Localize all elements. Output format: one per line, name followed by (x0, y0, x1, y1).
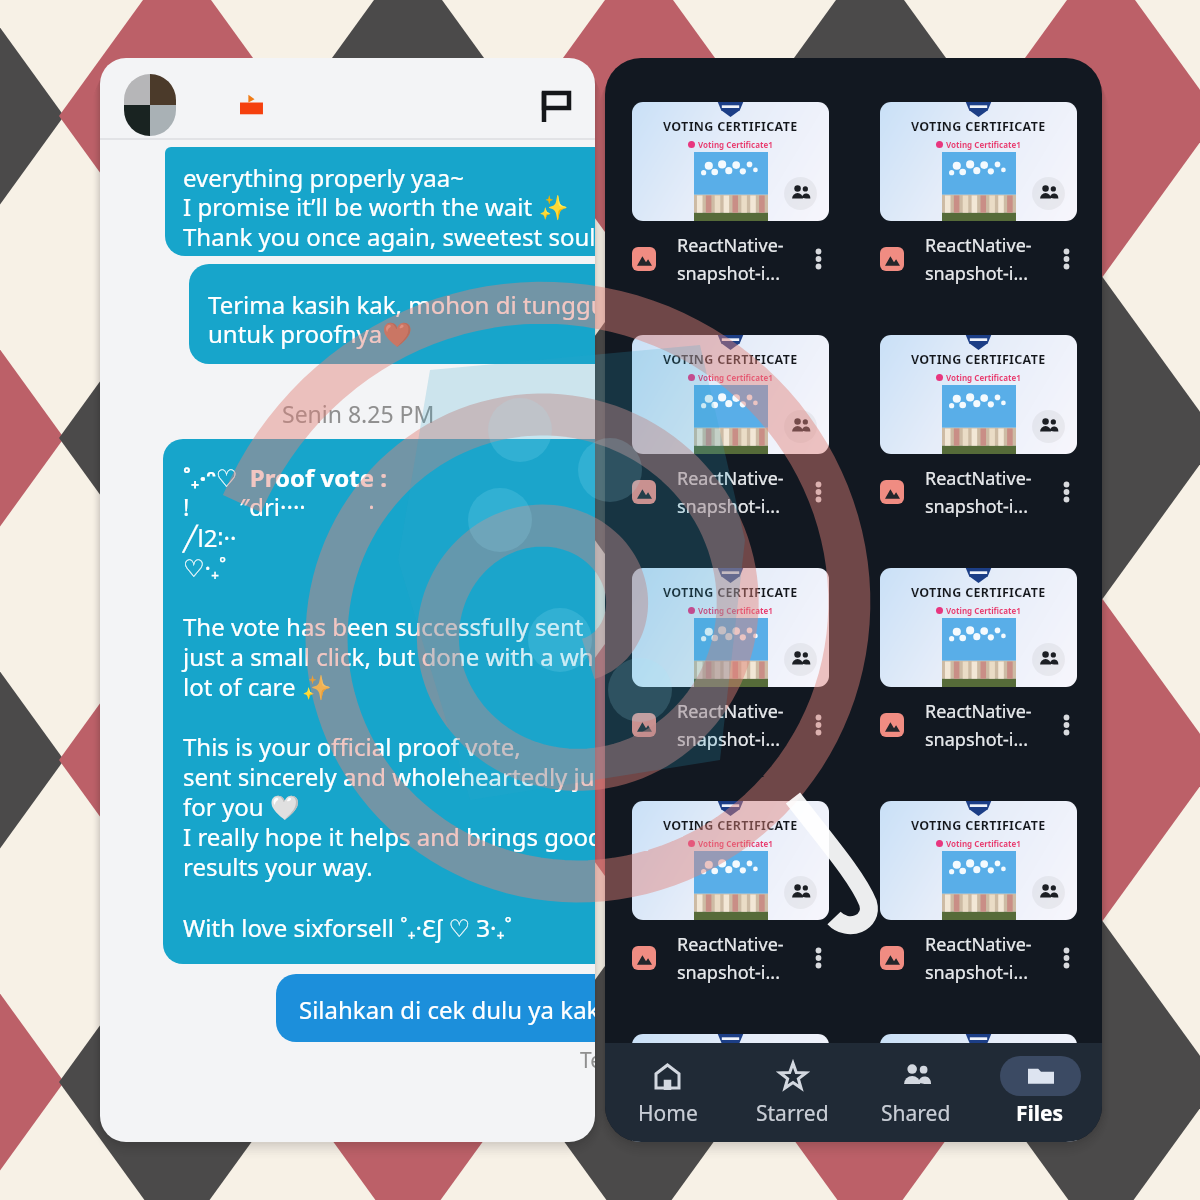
button[interactable]: More options (807, 705, 829, 745)
button[interactable]: Report (528, 78, 584, 134)
button[interactable]: Terima kasih kak, mohon di tunggu untuk … (189, 264, 595, 364)
staticText: ReactNative- snapshot-i... (677, 466, 784, 518)
staticText: ReactNative- snapshot-i... (925, 699, 1032, 751)
button[interactable]: Shared with (784, 1109, 817, 1142)
button[interactable]: VOTING CERTIFICATE (880, 335, 1077, 518)
staticText: VOTING CERTIFICATE (911, 351, 1046, 368)
staticText: ReactNative- snapshot-i... (925, 233, 1032, 285)
staticText: Senin 8.25 PM (282, 398, 435, 429)
button[interactable]: VOTING CERTIFICATE (880, 102, 1077, 285)
staticText: VOTING CERTIFICATE (663, 584, 798, 601)
button[interactable]: Shared with (784, 876, 817, 909)
button[interactable]: VOTING CERTIFICATE (632, 568, 829, 751)
button[interactable]: More options (807, 938, 829, 978)
staticText: Files (1016, 1099, 1064, 1128)
staticText: VOTING CERTIFICATE (911, 817, 1046, 834)
staticText: VOTING CERTIFICATE (911, 1050, 1046, 1067)
staticText: Voting Certificate1 (698, 605, 773, 616)
button[interactable]: Shared with (1032, 177, 1065, 210)
staticText: VOTING CERTIFICATE (911, 118, 1046, 135)
button[interactable]: VOTING CERTIFICATE (880, 801, 1077, 984)
button[interactable]: Shared with (1032, 1109, 1065, 1142)
staticText: ˚₊·ᵔ♡ Proof vote : ! ″dri···· · ╱l2∶·· ♡… (183, 461, 595, 944)
staticText: VOTING CERTIFICATE (663, 351, 798, 368)
button[interactable]: VOTING CERTIFICATE (632, 801, 829, 984)
staticText: Home (638, 1099, 698, 1128)
staticText: Voting Certificate1 (946, 372, 1021, 383)
button[interactable]: More options (1055, 472, 1077, 512)
button[interactable]: More options (807, 472, 829, 512)
staticText: Voting Certificate1 (946, 838, 1021, 849)
button[interactable]: More options (1055, 705, 1077, 745)
button[interactable]: Shared with (1032, 643, 1065, 676)
staticText: Voting Certificate1 (946, 605, 1021, 616)
staticText: VOTING CERTIFICATE (663, 118, 798, 135)
button[interactable]: More options (807, 239, 829, 279)
button[interactable]: More options (1055, 239, 1077, 279)
staticText: ReactNative- snapshot-i... (925, 932, 1032, 984)
button[interactable]: More options (1055, 938, 1077, 978)
staticText: VOTING CERTIFICATE (911, 584, 1046, 601)
staticText: ReactNative- snapshot-i... (677, 932, 784, 984)
staticText: VOTING CERTIFICATE (663, 817, 798, 834)
staticText: Voting Certificate1 (698, 139, 773, 150)
staticText: Voting Certificate1 (698, 838, 773, 849)
staticText: Voting Certificate1 (946, 1071, 1021, 1082)
button[interactable]: VOTING CERTIFICATE (632, 1034, 829, 1142)
button[interactable]: Shared with (784, 643, 817, 676)
button[interactable]: VOTING CERTIFICATE (880, 1034, 1077, 1142)
staticText: Silahkan di cek dulu ya kak (299, 993, 595, 1026)
staticText: ReactNative- snapshot-i... (677, 699, 784, 751)
button[interactable]: VOTING CERTIFICATE (632, 335, 829, 518)
button[interactable]: Shared with (1032, 876, 1065, 909)
button[interactable]: Silahkan di cek dulu ya kak (276, 974, 595, 1042)
button[interactable]: Shared with (784, 410, 817, 443)
staticText: Terima kasih kak, mohon di tunggu untuk … (208, 288, 595, 350)
staticText: Starred (756, 1099, 829, 1128)
button[interactable]: Starred (730, 1057, 854, 1129)
button[interactable]: Shared with (1032, 410, 1065, 443)
button[interactable]: Shared (854, 1057, 978, 1129)
staticText: Shared (881, 1099, 951, 1128)
staticText: Voting Certificate1 (946, 139, 1021, 150)
button[interactable]: Home (605, 1057, 730, 1129)
button[interactable]: ˚₊·ᵔ♡ Proof vote : ! ″dri···· · ╱l2∶·· ♡… (163, 439, 595, 964)
staticText: ReactNative- snapshot-i... (925, 466, 1032, 518)
staticText: everything properly yaa~ I promise it’ll… (183, 161, 595, 253)
button[interactable]: Files (978, 1057, 1102, 1129)
staticText: VOTING CERTIFICATE (663, 1050, 798, 1067)
button[interactable]: everything properly yaa~ I promise it’ll… (165, 147, 595, 256)
button[interactable]: Shared with (784, 177, 817, 210)
button[interactable]: VOTING CERTIFICATE (632, 102, 829, 285)
staticText: Voting Certificate1 (698, 372, 773, 383)
staticText: Te (580, 1046, 595, 1075)
staticText: ReactNative- snapshot-i... (677, 233, 784, 285)
button[interactable]: VOTING CERTIFICATE (880, 568, 1077, 751)
